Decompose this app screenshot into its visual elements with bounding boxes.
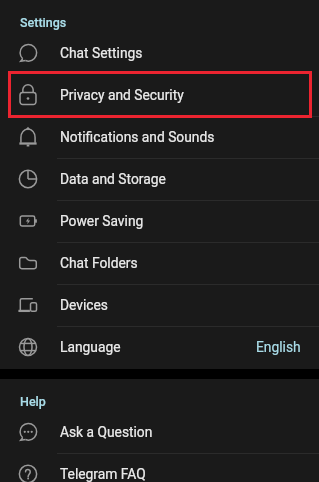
staticText: Language — [60, 339, 121, 355]
button[interactable]: Power Saving — [0, 200, 319, 242]
button[interactable]: Language — [0, 326, 319, 368]
staticText: Settings — [20, 15, 67, 30]
other: Notifications and Sounds — [16, 125, 40, 149]
other: Chat Folders — [16, 251, 40, 275]
staticText: Chat Settings — [60, 45, 143, 61]
staticText: Devices — [60, 297, 108, 313]
other: Chat Settings — [16, 41, 40, 65]
staticText: English — [256, 339, 301, 355]
staticText: Telegram FAQ — [60, 466, 146, 482]
staticText: Power Saving — [60, 213, 144, 229]
staticText: Chat Folders — [60, 255, 138, 271]
staticText: Ask a Question — [60, 424, 153, 440]
button[interactable]: Devices — [0, 284, 319, 326]
other: Privacy and Security — [16, 83, 40, 107]
button[interactable]: Chat Folders — [0, 242, 319, 284]
button[interactable]: Chat Settings — [0, 32, 319, 74]
button[interactable]: Privacy and Security — [0, 74, 319, 116]
staticText: Data and Storage — [60, 171, 166, 187]
other: Telegram FAQ — [16, 462, 40, 482]
other: Language — [16, 335, 40, 359]
staticText: Notifications and Sounds — [60, 129, 215, 145]
staticText: Help — [20, 394, 46, 409]
button[interactable]: Data and Storage — [0, 158, 319, 200]
button[interactable]: Notifications and Sounds — [0, 116, 319, 158]
other: Devices — [16, 293, 40, 317]
other: Ask a Question — [16, 420, 40, 444]
button[interactable]: Telegram FAQ — [0, 453, 319, 482]
other: Power Saving — [16, 209, 40, 233]
staticText: Privacy and Security — [60, 87, 184, 103]
other: Data and Storage — [16, 167, 40, 191]
button[interactable]: Ask a Question — [0, 411, 319, 453]
